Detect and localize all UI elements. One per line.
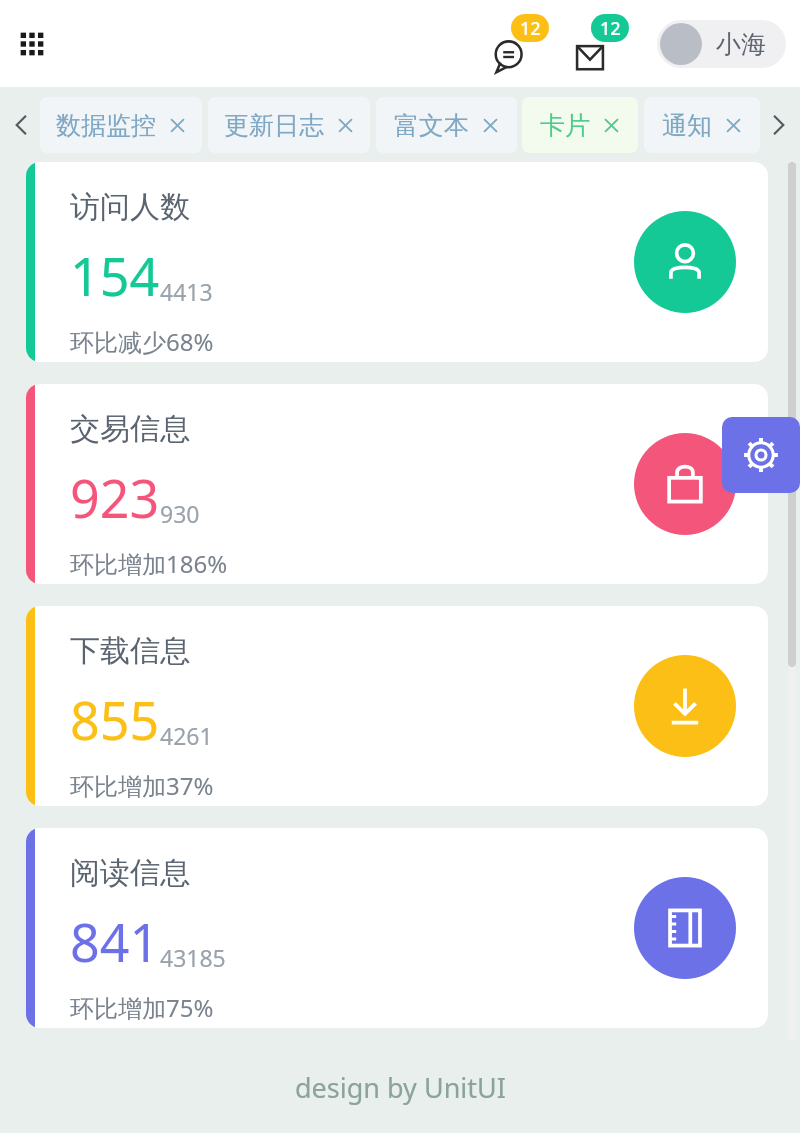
button[interactable]: 数据监控 [40,97,202,153]
button[interactable]: Settings [722,417,800,493]
staticText: 855 [70,684,160,755]
staticText: design by UnitUI [295,1069,506,1106]
staticText: 4413 [160,276,213,307]
staticText: 交易信息 [70,410,190,448]
staticText: 4261 [160,720,213,751]
button[interactable]: Previous [4,107,40,143]
staticText: 环比增加186% [70,547,228,580]
button[interactable]: 小海 [657,20,786,68]
staticText: 923 [70,462,160,533]
button[interactable]: 访问人数 [634,211,736,313]
staticText: 通知 [662,110,712,141]
button[interactable]: 阅读信息 [634,877,736,979]
staticText: 小海 [716,29,766,60]
staticText: 更新日志 [224,110,324,141]
button[interactable]: Mail [573,14,631,74]
staticText: 访问人数 [70,188,190,226]
button[interactable]: Messages [493,14,551,74]
button[interactable]: 访问人数 [26,162,768,362]
button[interactable]: 阅读信息 [26,828,768,1028]
staticText: 富文本 [394,110,469,141]
staticText: 阅读信息 [70,854,190,892]
button[interactable]: 富文本 [376,97,517,153]
button[interactable]: 交易信息 [634,433,736,535]
button[interactable]: Next [760,107,796,143]
staticText: 841 [70,906,160,977]
staticText: 12 [520,16,541,41]
button[interactable]: 下载信息 [634,655,736,757]
button[interactable]: 交易信息 [26,384,768,584]
staticText: 930 [160,498,200,529]
staticText: 43185 [160,942,226,973]
button[interactable]: 通知 [644,97,760,153]
staticText: 环比增加37% [70,769,214,802]
button[interactable]: 下载信息 [26,606,768,806]
staticText: 卡片 [540,110,590,141]
button[interactable]: 更新日志 [208,97,370,153]
button[interactable]: Apps [8,20,56,68]
staticText: 下载信息 [70,632,190,670]
staticText: 环比增加75% [70,991,214,1024]
staticText: 154 [70,240,160,311]
staticText: 12 [600,16,621,41]
button[interactable]: 卡片 [522,97,638,153]
staticText: 数据监控 [56,110,156,141]
staticText: 环比减少68% [70,325,214,358]
